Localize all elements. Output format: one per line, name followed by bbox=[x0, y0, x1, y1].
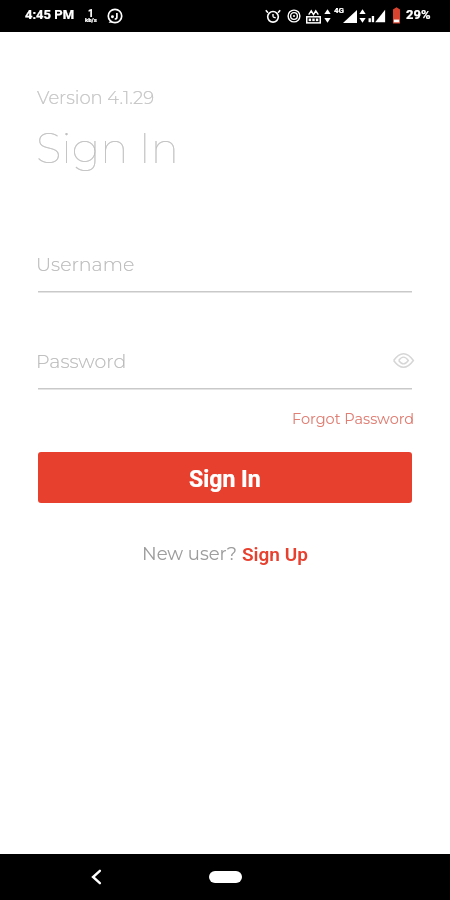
button[interactable]: Show password bbox=[390, 347, 416, 373]
button[interactable]: Home bbox=[201, 866, 249, 888]
staticText: kb/s bbox=[85, 16, 97, 23]
button[interactable]: Sign Up bbox=[242, 543, 308, 565]
staticText: 29% bbox=[406, 7, 431, 22]
staticText: Username bbox=[36, 253, 135, 276]
button[interactable]: Back bbox=[83, 863, 111, 891]
staticText: 1 bbox=[88, 8, 94, 20]
staticText: 4G bbox=[334, 6, 345, 15]
button[interactable]: Sign In bbox=[38, 452, 412, 503]
staticText: Sign In bbox=[36, 122, 179, 173]
button[interactable]: Forgot Password bbox=[292, 410, 415, 428]
staticText: Version 4.1.29 bbox=[37, 87, 154, 109]
staticText: Password bbox=[36, 350, 127, 373]
staticText: Sign In bbox=[189, 466, 261, 493]
staticText: New user? bbox=[142, 543, 242, 565]
staticText: 4:45 PM bbox=[25, 7, 75, 22]
